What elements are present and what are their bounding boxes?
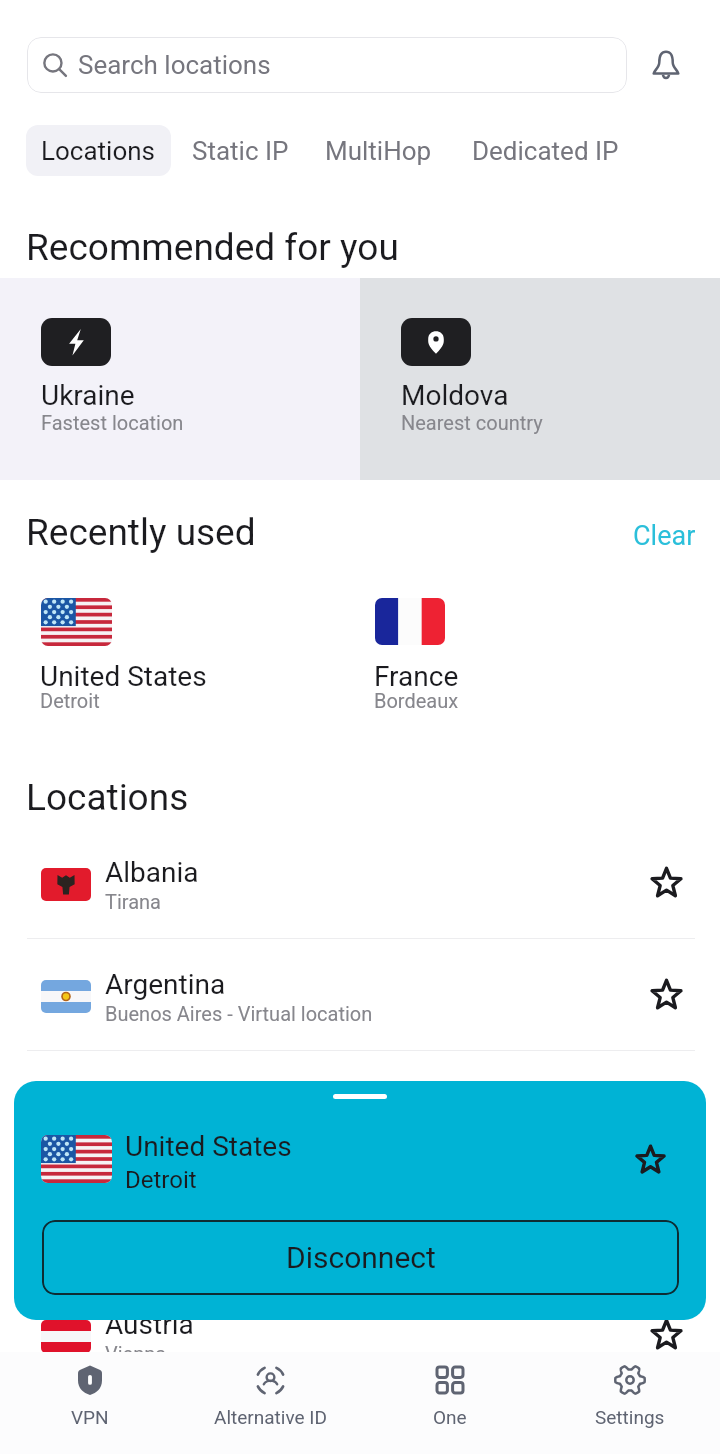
staticText: Buenos Aires - Virtual location bbox=[105, 1002, 373, 1025]
staticText: United States bbox=[40, 660, 207, 693]
button[interactable]: Search locations bbox=[27, 37, 627, 93]
staticText: Search locations bbox=[78, 50, 271, 80]
staticText: VPN bbox=[71, 1406, 109, 1428]
button[interactable]: Favorite bbox=[644, 972, 688, 1016]
staticText: Nearest country bbox=[401, 411, 543, 434]
staticText: Argentina bbox=[105, 968, 226, 1001]
staticText: Austria bbox=[105, 1308, 194, 1341]
button[interactable]: Favorite bbox=[628, 1137, 672, 1181]
staticText: Albania bbox=[105, 856, 199, 889]
button[interactable]: Favorite bbox=[644, 1196, 688, 1240]
staticText: United States bbox=[125, 1130, 292, 1163]
button[interactable]: Alternative ID bbox=[180, 1352, 360, 1436]
staticText: Static IP bbox=[192, 136, 289, 166]
staticText: Detroit bbox=[40, 689, 100, 712]
staticText: Dedicated IP bbox=[472, 136, 619, 166]
staticText: Disconnect bbox=[286, 1240, 436, 1275]
button[interactable]: Favorite bbox=[644, 860, 688, 904]
staticText: Locations bbox=[26, 776, 189, 819]
button[interactable]: France bbox=[361, 588, 661, 708]
button[interactable]: Clear bbox=[623, 512, 706, 560]
staticText: Settings bbox=[595, 1406, 665, 1428]
staticText: One bbox=[433, 1406, 467, 1428]
button[interactable]: One bbox=[360, 1352, 540, 1436]
staticText: Fastest location bbox=[41, 411, 184, 434]
button[interactable]: Argentina bbox=[0, 938, 720, 1050]
staticText: MultiHop bbox=[325, 136, 432, 166]
staticText: Yerevan bbox=[105, 1114, 176, 1137]
staticText: Recommended for you bbox=[26, 226, 399, 269]
button[interactable]: VPN bbox=[0, 1352, 180, 1436]
staticText: Australia bbox=[105, 1192, 216, 1225]
staticText: Armenia bbox=[105, 1080, 210, 1113]
button[interactable]: Austria bbox=[0, 1278, 720, 1390]
button[interactable]: Albania bbox=[0, 826, 720, 938]
staticText: Bordeaux bbox=[374, 689, 459, 712]
staticText: Recently used bbox=[26, 511, 256, 554]
button[interactable]: Dedicated IP bbox=[452, 125, 639, 176]
button[interactable]: Notifications bbox=[638, 37, 694, 93]
staticText: Tirana bbox=[105, 890, 161, 913]
staticText: Clear bbox=[633, 520, 696, 552]
staticText: Ukraine bbox=[41, 379, 135, 412]
button[interactable]: Favorite bbox=[644, 1312, 688, 1356]
staticText: France bbox=[374, 660, 459, 693]
staticText: Moldova bbox=[401, 379, 509, 412]
button[interactable]: Moldova bbox=[360, 278, 720, 480]
staticText: Locations bbox=[41, 136, 156, 166]
staticText: Vienna bbox=[105, 1342, 167, 1365]
button[interactable]: Locations bbox=[26, 125, 171, 176]
button[interactable]: Armenia bbox=[0, 1050, 720, 1162]
button[interactable]: Australia bbox=[0, 1162, 720, 1274]
button[interactable]: Ukraine bbox=[0, 278, 360, 480]
staticText: Alternative ID bbox=[214, 1406, 327, 1428]
button[interactable]: MultiHop bbox=[306, 125, 452, 176]
button[interactable]: Static IP bbox=[171, 125, 306, 176]
button[interactable]: Disconnect bbox=[42, 1220, 679, 1295]
staticText: Detroit bbox=[125, 1166, 197, 1194]
button[interactable]: United States bbox=[27, 588, 327, 708]
button[interactable]: Settings bbox=[540, 1352, 720, 1436]
